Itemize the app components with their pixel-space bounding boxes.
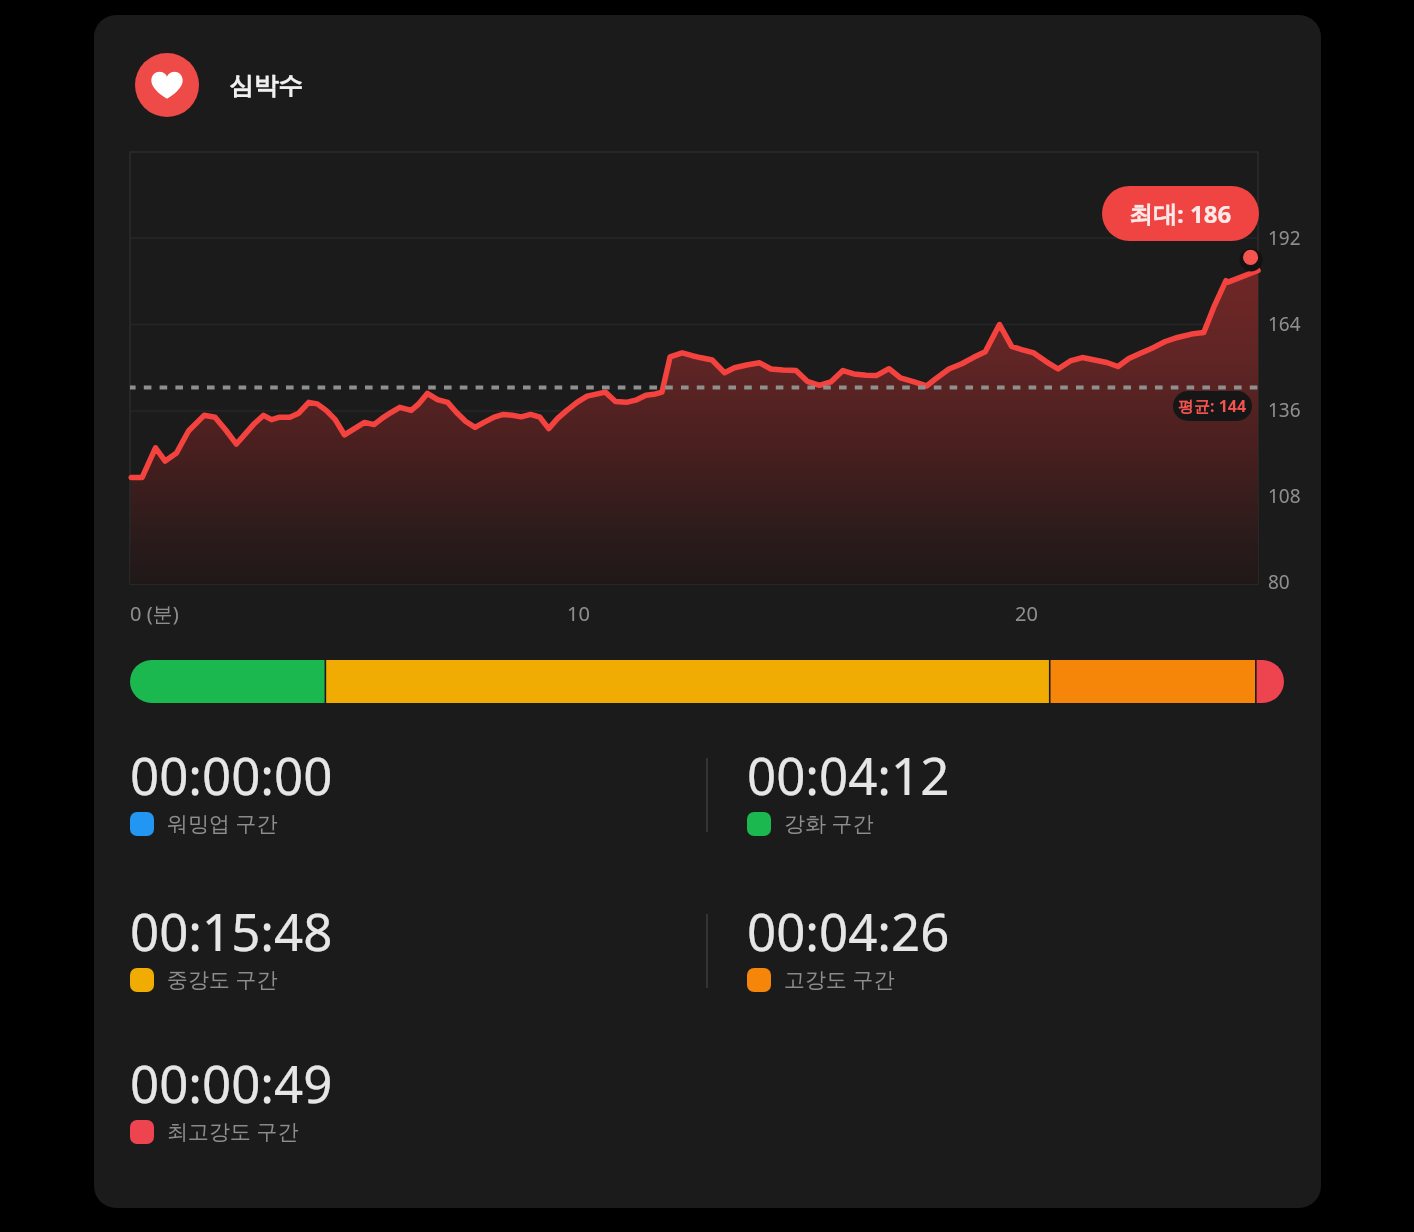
staticText: 고강도 구간 <box>784 965 895 994</box>
staticText: 10 <box>567 600 590 627</box>
button[interactable]: Heart rate <box>135 53 303 117</box>
button[interactable]: 00:04:12 <box>747 740 1287 860</box>
staticText: 중강도 구간 <box>167 965 278 994</box>
button[interactable]: 00:00:49 <box>130 1048 670 1168</box>
staticText: 00:00:00 <box>130 740 333 809</box>
staticText: 워밍업 구간 <box>167 809 278 838</box>
staticText: 192 <box>1268 225 1301 251</box>
staticText: 강화 구간 <box>784 809 874 838</box>
button[interactable]: 00:00:00 <box>130 740 670 860</box>
button[interactable] <box>130 660 1284 703</box>
staticText: 00:04:26 <box>747 896 950 965</box>
button[interactable]: 00:15:48 <box>130 896 670 1016</box>
staticText: 00:15:48 <box>130 896 333 965</box>
staticText: 최고강도 구간 <box>167 1117 299 1146</box>
staticText: 80 <box>1268 569 1290 595</box>
button[interactable]: 00:04:26 <box>747 896 1287 1016</box>
other: Heart rate <box>135 53 199 117</box>
staticText: 00:04:12 <box>747 740 950 809</box>
staticText: 심박수 <box>229 70 303 101</box>
staticText: 108 <box>1268 483 1301 509</box>
staticText: 136 <box>1268 397 1301 423</box>
staticText: 최대: 186 <box>1129 197 1232 230</box>
staticText: 0 (분) <box>130 600 179 627</box>
staticText: 20 <box>1015 600 1038 627</box>
staticText: 164 <box>1268 311 1301 337</box>
staticText: 00:00:49 <box>130 1048 333 1117</box>
staticText: 평균: 144 <box>1178 395 1247 417</box>
